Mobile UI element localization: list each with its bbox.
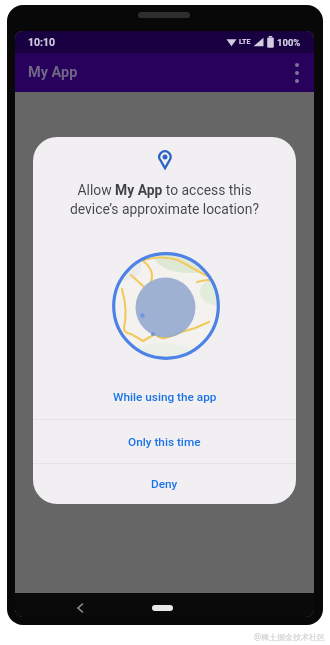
button[interactable]: Only this time <box>33 420 296 463</box>
staticText: Only this time <box>128 435 201 449</box>
staticText: While using the app <box>113 390 217 404</box>
staticText: Deny <box>151 477 178 491</box>
button[interactable] <box>152 605 173 611</box>
staticText: My App <box>28 64 78 81</box>
staticText: @稀土掘金技术社区 <box>254 631 326 642</box>
staticText: Allow My App to access this device’s app… <box>33 182 296 218</box>
button[interactable]: While using the app <box>33 374 296 419</box>
button[interactable]: Deny <box>33 464 296 504</box>
staticText: LTE <box>239 38 251 46</box>
button[interactable] <box>76 603 84 613</box>
button[interactable] <box>292 61 302 85</box>
staticText: 100% <box>277 37 301 48</box>
staticText: 10:10 <box>28 36 56 48</box>
